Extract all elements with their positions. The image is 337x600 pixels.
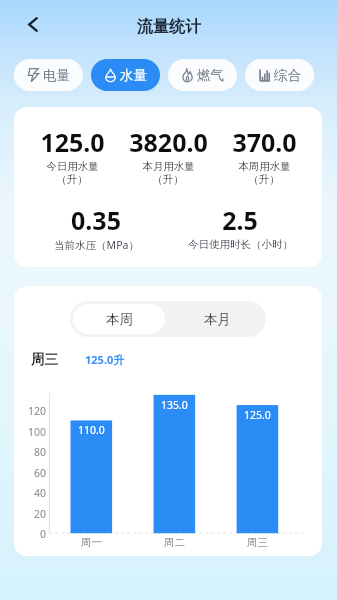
staticText: 周一 bbox=[81, 536, 102, 549]
staticText: 40 bbox=[34, 486, 47, 498]
button[interactable]: 本周 bbox=[73, 304, 165, 334]
staticText: 125.0升 bbox=[85, 352, 125, 367]
staticText: 3820.0 bbox=[129, 125, 208, 159]
staticText: 流量统计 bbox=[137, 17, 201, 37]
staticText: 本月用水量 bbox=[142, 160, 195, 173]
staticText: 125.0 bbox=[40, 125, 105, 159]
staticText: 100 bbox=[28, 425, 47, 437]
staticText: 周三 bbox=[247, 536, 268, 549]
staticText: 80 bbox=[34, 445, 47, 457]
staticText: 125.0 bbox=[244, 408, 271, 422]
staticText: （升） bbox=[248, 173, 280, 186]
staticText: 本周 bbox=[106, 311, 133, 328]
button[interactable]: 电量 bbox=[14, 59, 83, 91]
staticText: （升） bbox=[56, 173, 88, 186]
button[interactable]: 综合 bbox=[245, 59, 314, 91]
button[interactable]: 燃气 bbox=[168, 59, 237, 91]
staticText: 2.5 bbox=[222, 203, 258, 237]
staticText: 120 bbox=[28, 404, 47, 416]
button[interactable]: 本月 bbox=[168, 301, 266, 337]
staticText: 370.0 bbox=[232, 125, 297, 159]
staticText: 综合 bbox=[274, 67, 301, 84]
staticText: 周二 bbox=[164, 536, 185, 549]
staticText: 60 bbox=[34, 466, 47, 478]
staticText: 水量 bbox=[120, 67, 147, 84]
button[interactable]: 水量 bbox=[91, 59, 160, 91]
button[interactable]: Back bbox=[15, 6, 51, 42]
staticText: 0.35 bbox=[71, 203, 121, 237]
staticText: 110.0 bbox=[78, 423, 105, 437]
staticText: （升） bbox=[152, 173, 184, 186]
staticText: 燃气 bbox=[197, 67, 224, 84]
staticText: 当前水压（MPa） bbox=[54, 238, 139, 252]
staticText: 0 bbox=[40, 527, 47, 539]
staticText: 135.0 bbox=[161, 398, 188, 412]
staticText: 20 bbox=[34, 507, 47, 519]
staticText: 本月 bbox=[204, 311, 231, 328]
staticText: 电量 bbox=[43, 67, 70, 84]
staticText: 今日用水量 bbox=[46, 160, 99, 173]
staticText: 周三 bbox=[31, 351, 58, 368]
staticText: 今日使用时长（小时） bbox=[188, 238, 293, 251]
staticText: 本周用水量 bbox=[238, 160, 291, 173]
